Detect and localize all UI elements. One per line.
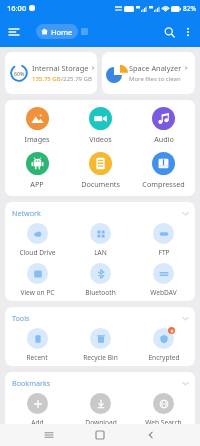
- staticText: Encrypted: [148, 353, 180, 362]
- staticText: Space Analyzer: [129, 63, 182, 73]
- staticText: Recycle Bin: [83, 353, 118, 362]
- button[interactable]: Bluetooth: [69, 262, 132, 297]
- button[interactable]: 60%: [5, 52, 97, 94]
- staticText: View on PC: [20, 288, 55, 297]
- button[interactable]: Documents: [69, 152, 132, 189]
- button[interactable]: Back: [140, 424, 162, 446]
- staticText: Recent: [26, 353, 48, 362]
- button[interactable]: APP: [5, 152, 69, 189]
- staticText: 82%: [183, 4, 196, 13]
- button[interactable]: Search: [159, 22, 179, 42]
- staticText: Download: [85, 418, 117, 427]
- button[interactable]: Images: [5, 107, 69, 144]
- staticText: /225.79 GB: [61, 75, 92, 83]
- staticText: FTP: [158, 248, 170, 257]
- staticText: Bookmarks: [12, 378, 51, 388]
- button[interactable]: Home: [36, 24, 78, 39]
- button[interactable]: Menu: [4, 22, 24, 42]
- button[interactable]: Encrypted: [132, 327, 195, 362]
- button[interactable]: Recents: [38, 424, 60, 446]
- button[interactable]: Compressed: [132, 152, 195, 189]
- staticText: Internal Storage: [32, 63, 89, 73]
- button[interactable]: WebDAV: [132, 262, 195, 297]
- button[interactable]: Videos: [69, 107, 132, 144]
- staticText: Documents: [81, 179, 120, 189]
- staticText: WebDAV: [150, 288, 177, 297]
- staticText: LAN: [94, 248, 107, 257]
- staticText: Cloud Drive: [19, 248, 56, 257]
- staticText: Add: [31, 418, 44, 427]
- button[interactable]: Home: [89, 424, 111, 446]
- staticText: Audio: [154, 134, 174, 144]
- button[interactable]: Bookmarks: [5, 372, 195, 390]
- staticText: Compressed: [142, 179, 185, 189]
- staticText: Tools: [12, 313, 30, 323]
- button[interactable]: Web Search: [132, 392, 195, 427]
- button[interactable]: Recycle Bin: [69, 327, 132, 362]
- button[interactable]: LAN: [69, 222, 132, 257]
- button[interactable]: More options: [179, 23, 197, 41]
- button[interactable]: Network: [5, 202, 195, 220]
- staticText: 16:00: [7, 3, 27, 13]
- staticText: 60%: [14, 70, 25, 77]
- staticText: Images: [24, 134, 50, 144]
- button[interactable]: View on PC: [5, 262, 69, 297]
- button[interactable]: Download: [69, 392, 132, 427]
- staticText: Bluetooth: [85, 288, 116, 297]
- staticText: Network: [12, 208, 41, 218]
- staticText: Web Search: [145, 418, 182, 427]
- staticText: Videos: [89, 134, 112, 144]
- button[interactable]: Cloud Drive: [5, 222, 69, 257]
- staticText: APP: [30, 179, 44, 189]
- staticText: 135.75 GB: [32, 75, 61, 83]
- button[interactable]: Tools: [5, 307, 195, 325]
- staticText: Home: [51, 27, 73, 37]
- staticText: More files to clean: [129, 75, 181, 83]
- button[interactable]: Recent: [5, 327, 69, 362]
- button[interactable]: Tabs: [81, 28, 88, 35]
- button[interactable]: Audio: [132, 107, 195, 144]
- button[interactable]: FTP: [132, 222, 195, 257]
- button[interactable]: Space Analyzer: [102, 52, 195, 94]
- button[interactable]: Add: [5, 392, 69, 427]
